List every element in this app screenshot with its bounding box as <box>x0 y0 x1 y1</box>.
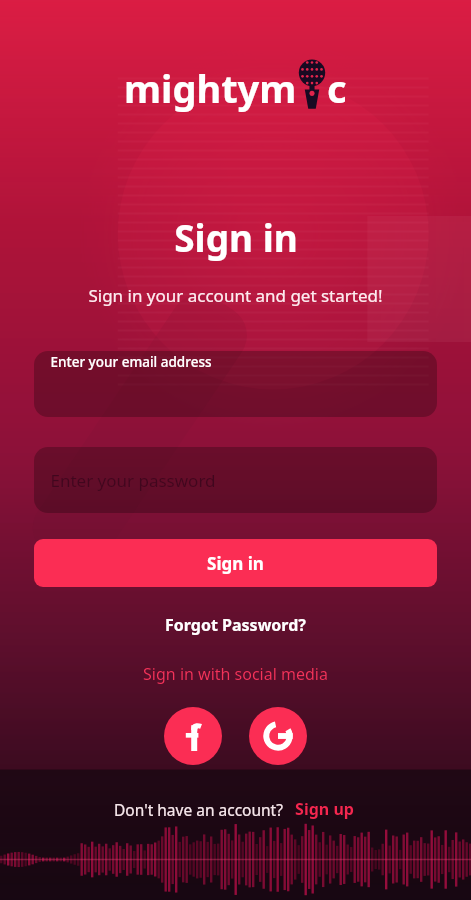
button[interactable]: Sign in with Facebook <box>164 707 222 765</box>
staticText: Sign in your account and get started! <box>88 284 383 307</box>
button[interactable]: Sign in <box>34 539 437 587</box>
staticText: Sign in <box>174 212 298 262</box>
button[interactable]: Sign up <box>292 796 357 822</box>
staticText: Enter your email address <box>50 353 212 371</box>
staticText: Enter your password <box>50 469 216 492</box>
button[interactable]: Sign in with Google <box>249 707 307 765</box>
staticText: Sign in <box>207 552 264 575</box>
button[interactable]: Enter your email address <box>34 351 437 417</box>
staticText: Sign up <box>295 798 354 820</box>
staticText: mightym <box>124 62 297 114</box>
staticText: c <box>327 62 347 114</box>
staticText: Forgot Password? <box>165 614 306 636</box>
button[interactable]: Forgot Password? <box>155 611 316 639</box>
staticText: Sign in with social media <box>143 663 328 685</box>
staticText: Don't have an account? <box>114 799 283 820</box>
button[interactable]: Enter your password <box>34 447 437 513</box>
